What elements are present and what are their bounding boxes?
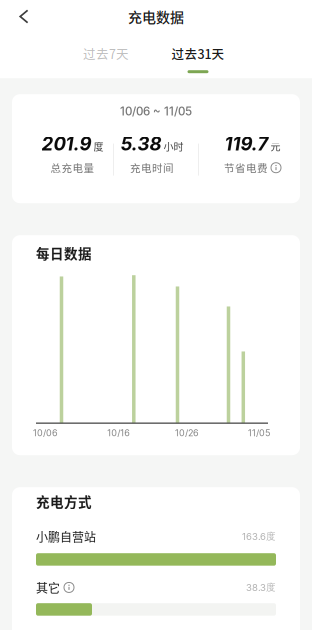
staticText: 38.3度 [246,582,276,593]
staticText: 每日数据 [36,244,92,262]
staticText: 小鹏自营站 [36,528,96,545]
button[interactable]: 说明 [271,163,281,173]
staticText: 过去31天 [171,45,224,62]
button[interactable]: 返回 [0,9,29,23]
staticText: 总充电量 [50,160,94,175]
staticText: 10/16 [107,428,130,438]
button[interactable]: 过去31天 [163,45,233,73]
staticText: 163.6度 [242,531,276,542]
staticText: 度 [93,139,103,153]
button[interactable]: 过去7天 [71,45,141,73]
staticText: 节省电费 [224,160,268,175]
staticText: 过去7天 [83,45,129,62]
staticText: 充电方式 [36,492,92,511]
staticText: 其它 [36,579,60,596]
staticText: 10/06 ~ 11/05 [120,105,192,118]
staticText: 10/26 [175,428,199,438]
staticText: 11/05 [248,428,270,438]
staticText: 10/06 [33,428,58,438]
staticText: 119.7 [224,133,268,154]
staticText: 元 [270,139,280,153]
staticText: 201.9 [41,133,91,154]
staticText: 充电时间 [130,160,174,175]
staticText: 充电数据 [128,7,184,26]
staticText: 小时 [163,139,183,153]
button[interactable]: 说明 [64,582,74,592]
staticText: 5.38 [120,133,161,154]
